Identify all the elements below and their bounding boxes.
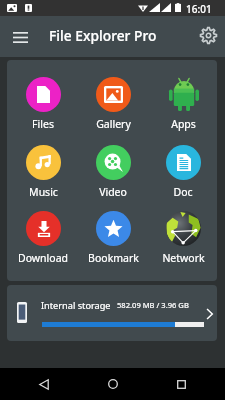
other: Open internal storage xyxy=(206,309,213,319)
button[interactable]: Gallery xyxy=(80,77,146,131)
button[interactable]: Apps xyxy=(150,77,216,131)
staticText: Internal storage xyxy=(41,299,111,312)
button[interactable]: Network xyxy=(150,211,216,265)
staticText: Apps xyxy=(171,117,196,131)
button[interactable]: Doc xyxy=(150,145,216,199)
button[interactable]: Home xyxy=(88,368,138,400)
button[interactable]: Download xyxy=(10,211,76,265)
staticText: Download xyxy=(18,251,68,265)
button[interactable]: Menu xyxy=(5,22,35,52)
staticText: Network xyxy=(162,251,205,265)
staticText: Bookmark xyxy=(88,251,139,265)
button[interactable]: Settings xyxy=(194,21,222,49)
button[interactable]: Bookmark xyxy=(80,211,146,265)
button[interactable]: Recent apps xyxy=(156,368,206,400)
staticText: Doc xyxy=(173,185,193,199)
staticText: 582.09 MB / 3.96 GB xyxy=(117,300,189,310)
button[interactable]: Video xyxy=(80,145,146,199)
button[interactable]: Files xyxy=(10,77,76,131)
staticText: Gallery xyxy=(96,117,131,131)
staticText: Video xyxy=(99,185,127,199)
button[interactable]: Back xyxy=(19,368,69,400)
staticText: Files xyxy=(32,117,54,131)
button[interactable]: Music xyxy=(10,145,76,199)
staticText: 16:01 xyxy=(186,2,212,16)
staticText: Music xyxy=(29,185,58,199)
staticText: File Explorer Pro xyxy=(49,26,157,45)
button[interactable]: Internal storage xyxy=(7,285,217,341)
